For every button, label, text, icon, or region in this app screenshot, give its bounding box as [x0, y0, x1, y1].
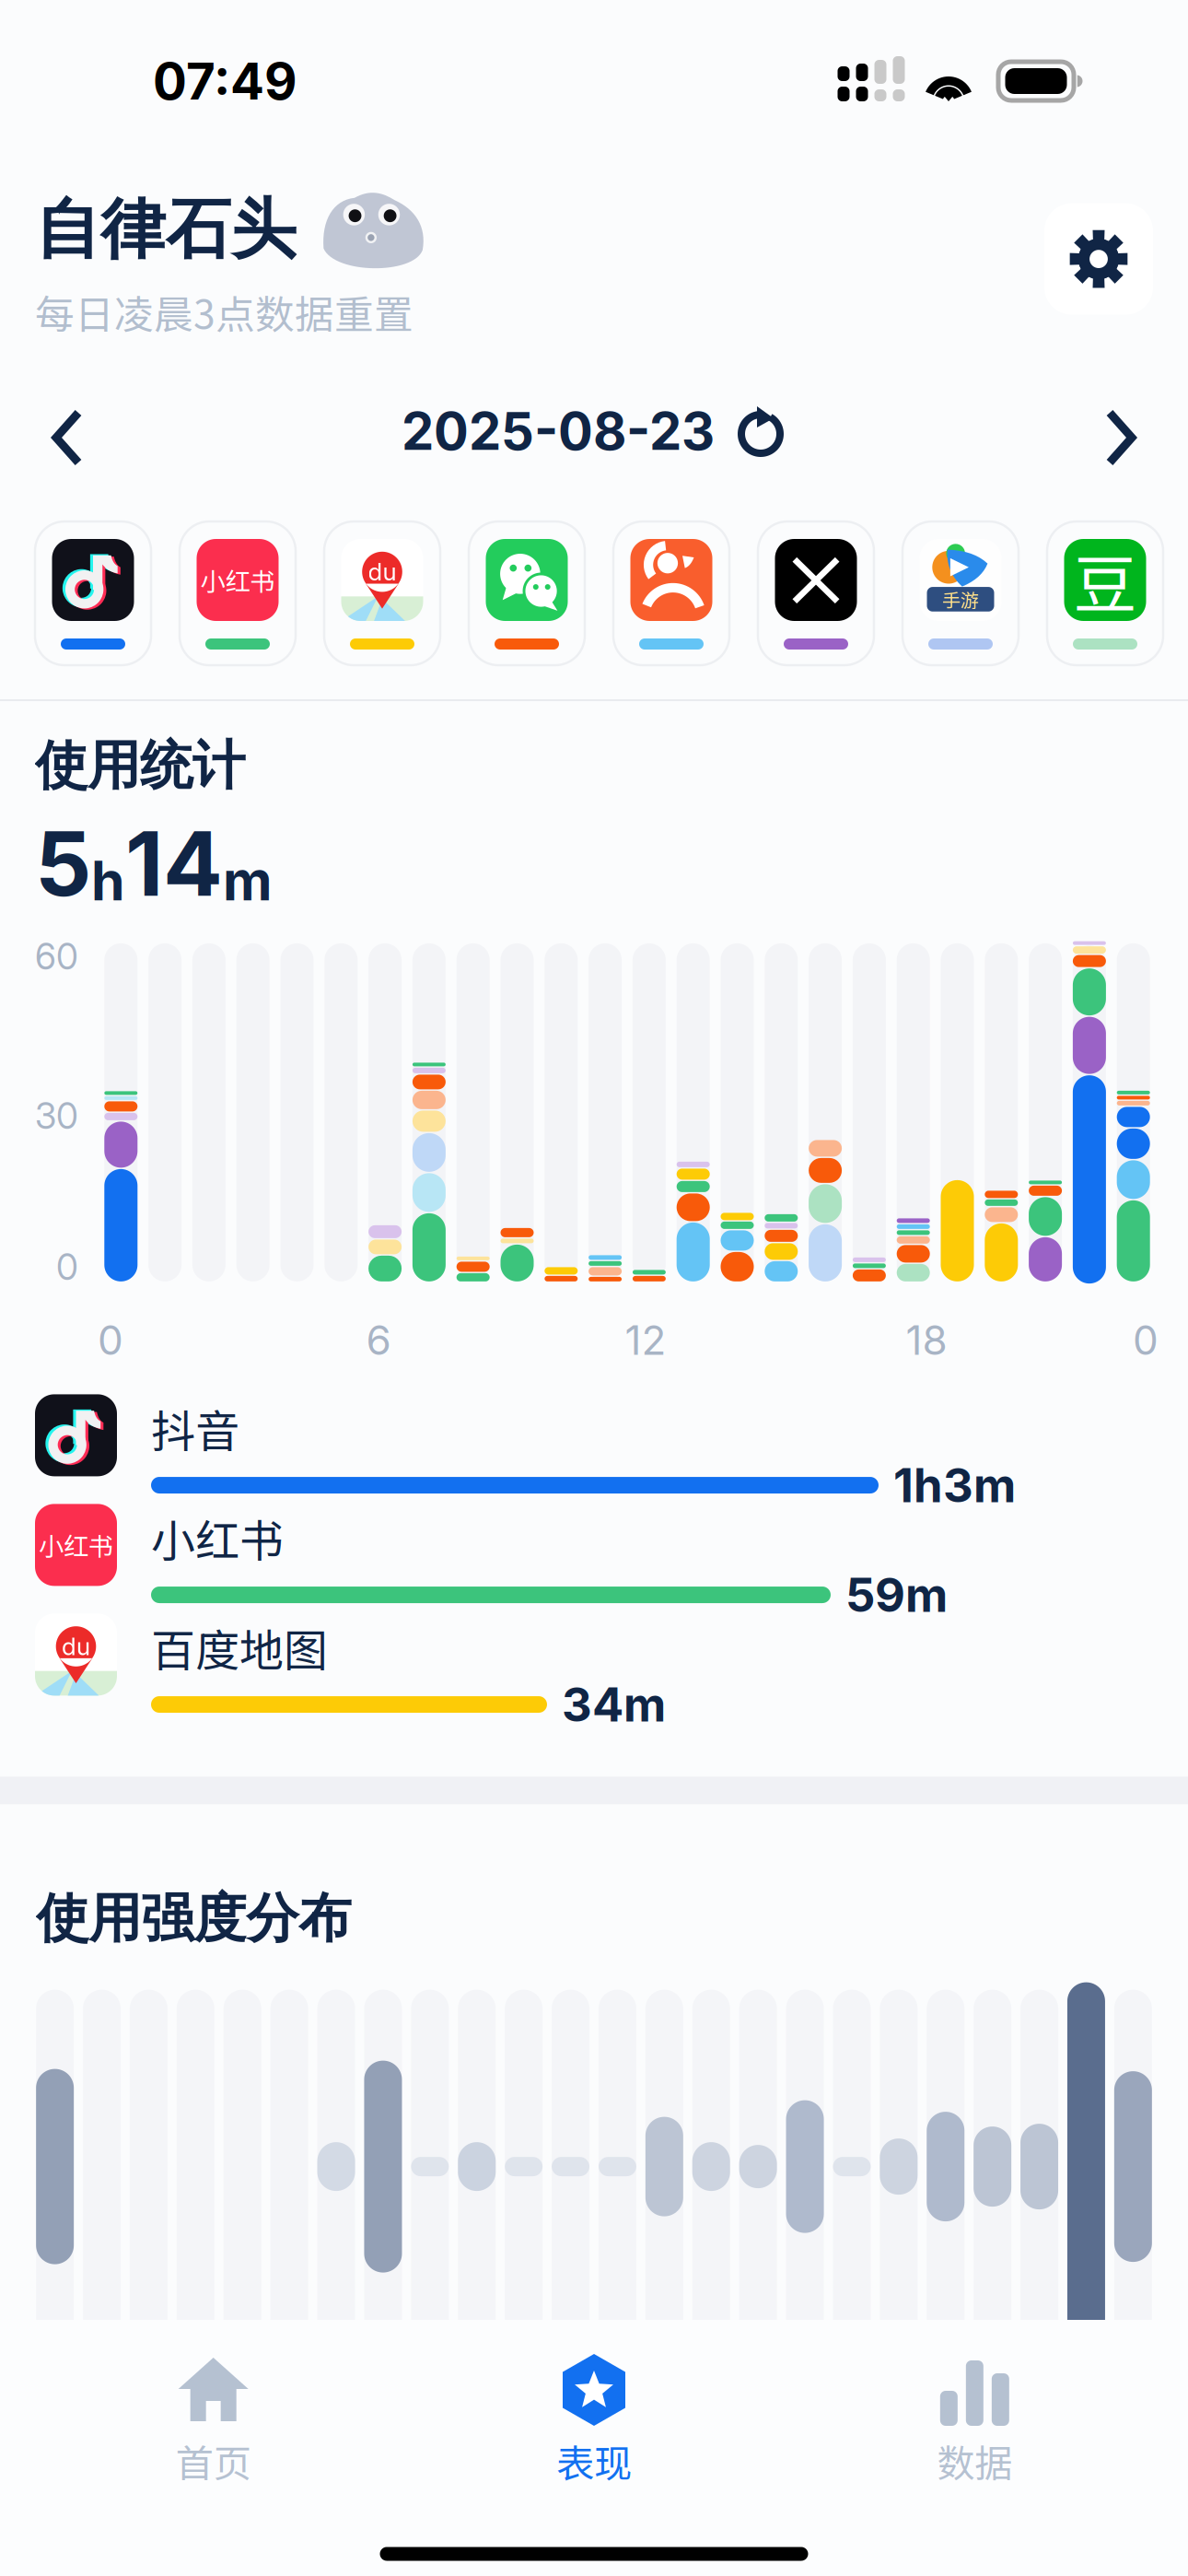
staticText: 百度地图 [151, 1615, 328, 1679]
staticText: 表现 [556, 2433, 632, 2488]
button[interactable]: 表现 [404, 2320, 784, 2517]
staticText: 使用强度分布 [36, 1885, 351, 1952]
staticText: m [223, 848, 273, 913]
button[interactable]: Previous day [39, 400, 96, 463]
button[interactable] [613, 521, 729, 665]
staticText: 34m [562, 1676, 666, 1733]
staticText: du [62, 1632, 90, 1661]
staticText: 30 [35, 1094, 78, 1138]
staticText: 小红书 [200, 562, 275, 598]
button[interactable]: 首页 [23, 2320, 404, 2517]
staticText: 小红书 [151, 1506, 284, 1570]
staticText: 2025-08-23 [402, 400, 715, 462]
staticText: 59m [845, 1567, 948, 1623]
staticText: 每日凌晨3点数据重置 [35, 283, 413, 340]
button[interactable]: 数据 [784, 2320, 1165, 2517]
staticText: 60 [35, 935, 78, 978]
staticText: h [91, 848, 125, 913]
staticText: 0 [56, 1246, 78, 1289]
staticText: 0 [98, 1316, 123, 1365]
button[interactable] [469, 521, 585, 665]
button[interactable]: 手游 [903, 521, 1019, 665]
staticText: 使用统计 [35, 732, 245, 799]
button[interactable]: Next day [1092, 400, 1149, 463]
staticText: 抖音 [151, 1396, 239, 1460]
staticText: 首页 [176, 2433, 251, 2488]
staticText: 0 [1133, 1316, 1159, 1365]
staticText: 1h3m [893, 1457, 1016, 1513]
staticText: 手游 [942, 586, 979, 613]
staticText: 14 [125, 810, 223, 917]
button[interactable]: 豆 [1047, 521, 1163, 665]
button[interactable]: 小红书 [180, 521, 296, 665]
staticText: du [368, 557, 396, 586]
staticText: 6 [366, 1316, 391, 1365]
staticText: 数据 [937, 2433, 1012, 2488]
staticText: 18 [906, 1316, 947, 1365]
staticText: 自律石头 [35, 189, 297, 270]
staticText: 12 [625, 1316, 666, 1365]
staticText: 5 [35, 810, 91, 917]
staticText: 豆 [1073, 534, 1137, 626]
button[interactable]: du [324, 521, 440, 665]
button[interactable] [758, 521, 874, 665]
button[interactable] [35, 521, 151, 665]
staticText: 07:49 [153, 51, 297, 111]
staticText: 小红书 [39, 1527, 113, 1563]
button[interactable]: Settings [1044, 203, 1153, 315]
